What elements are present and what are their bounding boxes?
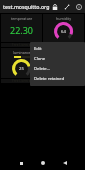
staticText: Free Licence [12,79,31,83]
button[interactable]: Back [59,157,71,169]
staticText: Free Licence [12,43,31,47]
staticText: test.mosquitto.org [3,3,50,10]
button[interactable]: Delete retained messages... [30,74,85,84]
button[interactable]: Edit [30,44,85,54]
button[interactable]: More options [74,2,83,11]
button[interactable]: Connection status [62,2,71,11]
staticText: 22.30 [10,24,34,36]
staticText: Delete... [34,66,51,72]
button[interactable]: humidity [43,14,84,42]
staticText: Clone [34,56,46,62]
button[interactable]: temperature [1,14,42,42]
button[interactable]: Delete... [30,64,85,74]
staticText: Delete retained messages... [34,76,81,82]
staticText: 64 [61,29,66,35]
button[interactable]: luminance [1,48,42,78]
staticText: temperature [11,16,33,21]
button[interactable]: Secure connection [50,2,59,11]
staticText: 25 [19,66,24,72]
staticText: Edit [34,46,42,52]
button[interactable]: Home [37,157,49,169]
button[interactable]: Recents [15,157,27,169]
staticText: humidity [56,16,71,21]
button[interactable]: Clone [30,54,85,64]
staticText: luminance [13,50,31,55]
